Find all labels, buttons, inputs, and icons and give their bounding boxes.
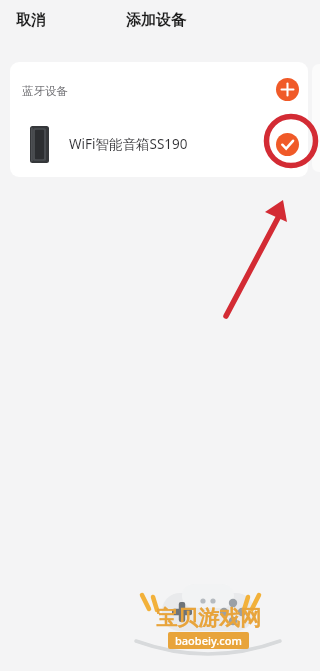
button[interactable]: WiFi智能音箱SS190: [10, 115, 308, 173]
staticText: 添加设备: [126, 11, 186, 30]
button[interactable]: 已选择: [273, 130, 301, 158]
staticText: baobeiy.com: [175, 633, 242, 648]
button[interactable]: 取消: [14, 7, 48, 34]
staticText: 取消: [16, 11, 46, 30]
staticText: 宝贝游戏网: [156, 605, 261, 631]
staticText: WiFi智能音箱SS190: [69, 135, 188, 153]
staticText: 蓝牙设备: [22, 84, 68, 98]
button[interactable]: 添加: [273, 75, 301, 103]
